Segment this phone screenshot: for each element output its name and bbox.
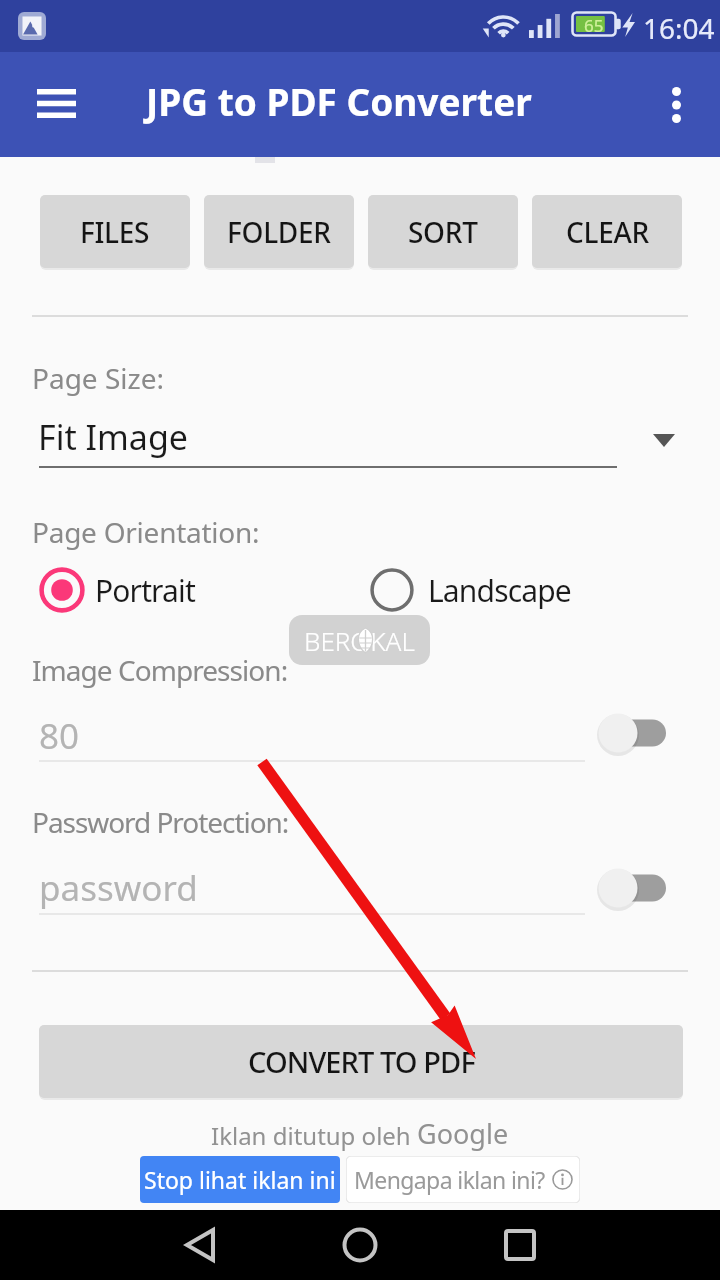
button[interactable]: Open navigation menu [19, 78, 93, 128]
button[interactable]: Recent apps [485, 1210, 555, 1280]
staticText: Stop lihat iklan ini [144, 1164, 336, 1195]
staticText: Portrait [95, 570, 195, 611]
staticText: 65 [584, 14, 604, 37]
button[interactable]: SORT [368, 195, 518, 268]
button[interactable]: FILES [40, 195, 190, 268]
staticText: CONVERT TO PDF [248, 1042, 475, 1081]
staticText: Page Orientation: [32, 513, 260, 551]
staticText: Image Compression: [32, 651, 288, 689]
button[interactable]: Portrait [38, 562, 218, 618]
staticText: BEROKAL [304, 623, 415, 658]
button[interactable]: Back [165, 1210, 235, 1280]
button[interactable]: Stop lihat iklan ini [140, 1156, 340, 1203]
staticText: Password Protection: [32, 803, 289, 841]
staticText: Fit Image [38, 414, 189, 460]
staticText: Google [417, 1115, 509, 1152]
button[interactable]: More options [648, 78, 704, 132]
button[interactable]: FOLDER [204, 195, 354, 268]
staticText: Page Size: [32, 359, 164, 397]
button[interactable]: CONVERT TO PDF [39, 1025, 683, 1098]
button[interactable]: Home [325, 1210, 395, 1280]
staticText: CLEAR [566, 213, 649, 251]
button[interactable]: Mengapa iklan ini? [346, 1156, 580, 1203]
staticText: Landscape [428, 570, 571, 611]
button[interactable]: Toggle [590, 705, 690, 761]
staticText: FOLDER [227, 213, 331, 251]
staticText: SORT [408, 213, 478, 251]
staticText: FILES [80, 213, 150, 251]
staticText: JPG to PDF Converter [146, 76, 532, 126]
staticText: password [39, 864, 198, 912]
button[interactable]: Landscape [368, 562, 578, 618]
staticText: Iklan ditutup oleh [211, 1119, 417, 1152]
button[interactable]: CLEAR [532, 195, 682, 268]
staticText: Mengapa iklan ini? [354, 1164, 545, 1195]
staticText: 80 [39, 712, 80, 760]
button[interactable]: Toggle [590, 860, 690, 916]
staticText: 16:04 [643, 9, 715, 47]
